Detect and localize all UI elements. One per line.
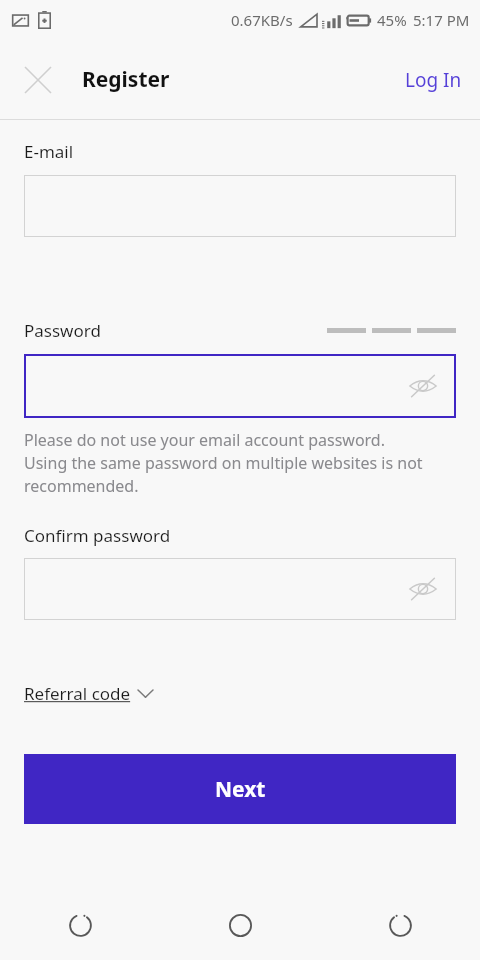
button[interactable]: Close — [14, 56, 62, 104]
staticText: Confirm password — [24, 524, 171, 547]
button[interactable]: Log In — [387, 57, 480, 103]
staticText: Log In — [405, 67, 462, 93]
button[interactable]: Show password — [24, 354, 456, 418]
staticText: Register — [82, 65, 170, 94]
staticText: Next — [215, 775, 266, 804]
button[interactable] — [24, 175, 456, 237]
button[interactable]: Show confirm password — [24, 558, 456, 620]
staticText: Referral code — [24, 682, 131, 705]
button[interactable]: Referral code — [24, 682, 153, 705]
staticText: Please do not use your email account pas… — [24, 429, 423, 497]
staticText: Password — [24, 319, 101, 342]
staticText: 45% — [377, 10, 407, 30]
button[interactable]: Show password — [404, 367, 442, 405]
staticText: 5:17 PM — [413, 10, 470, 30]
staticText: E-mail — [24, 140, 74, 163]
button[interactable]: Next — [24, 754, 456, 824]
button[interactable]: Recents — [0, 890, 160, 960]
button[interactable]: Home — [160, 890, 320, 960]
staticText: 0.67KB/s — [231, 10, 293, 30]
button[interactable]: Show confirm password — [404, 570, 442, 608]
button[interactable]: Back — [320, 890, 480, 960]
